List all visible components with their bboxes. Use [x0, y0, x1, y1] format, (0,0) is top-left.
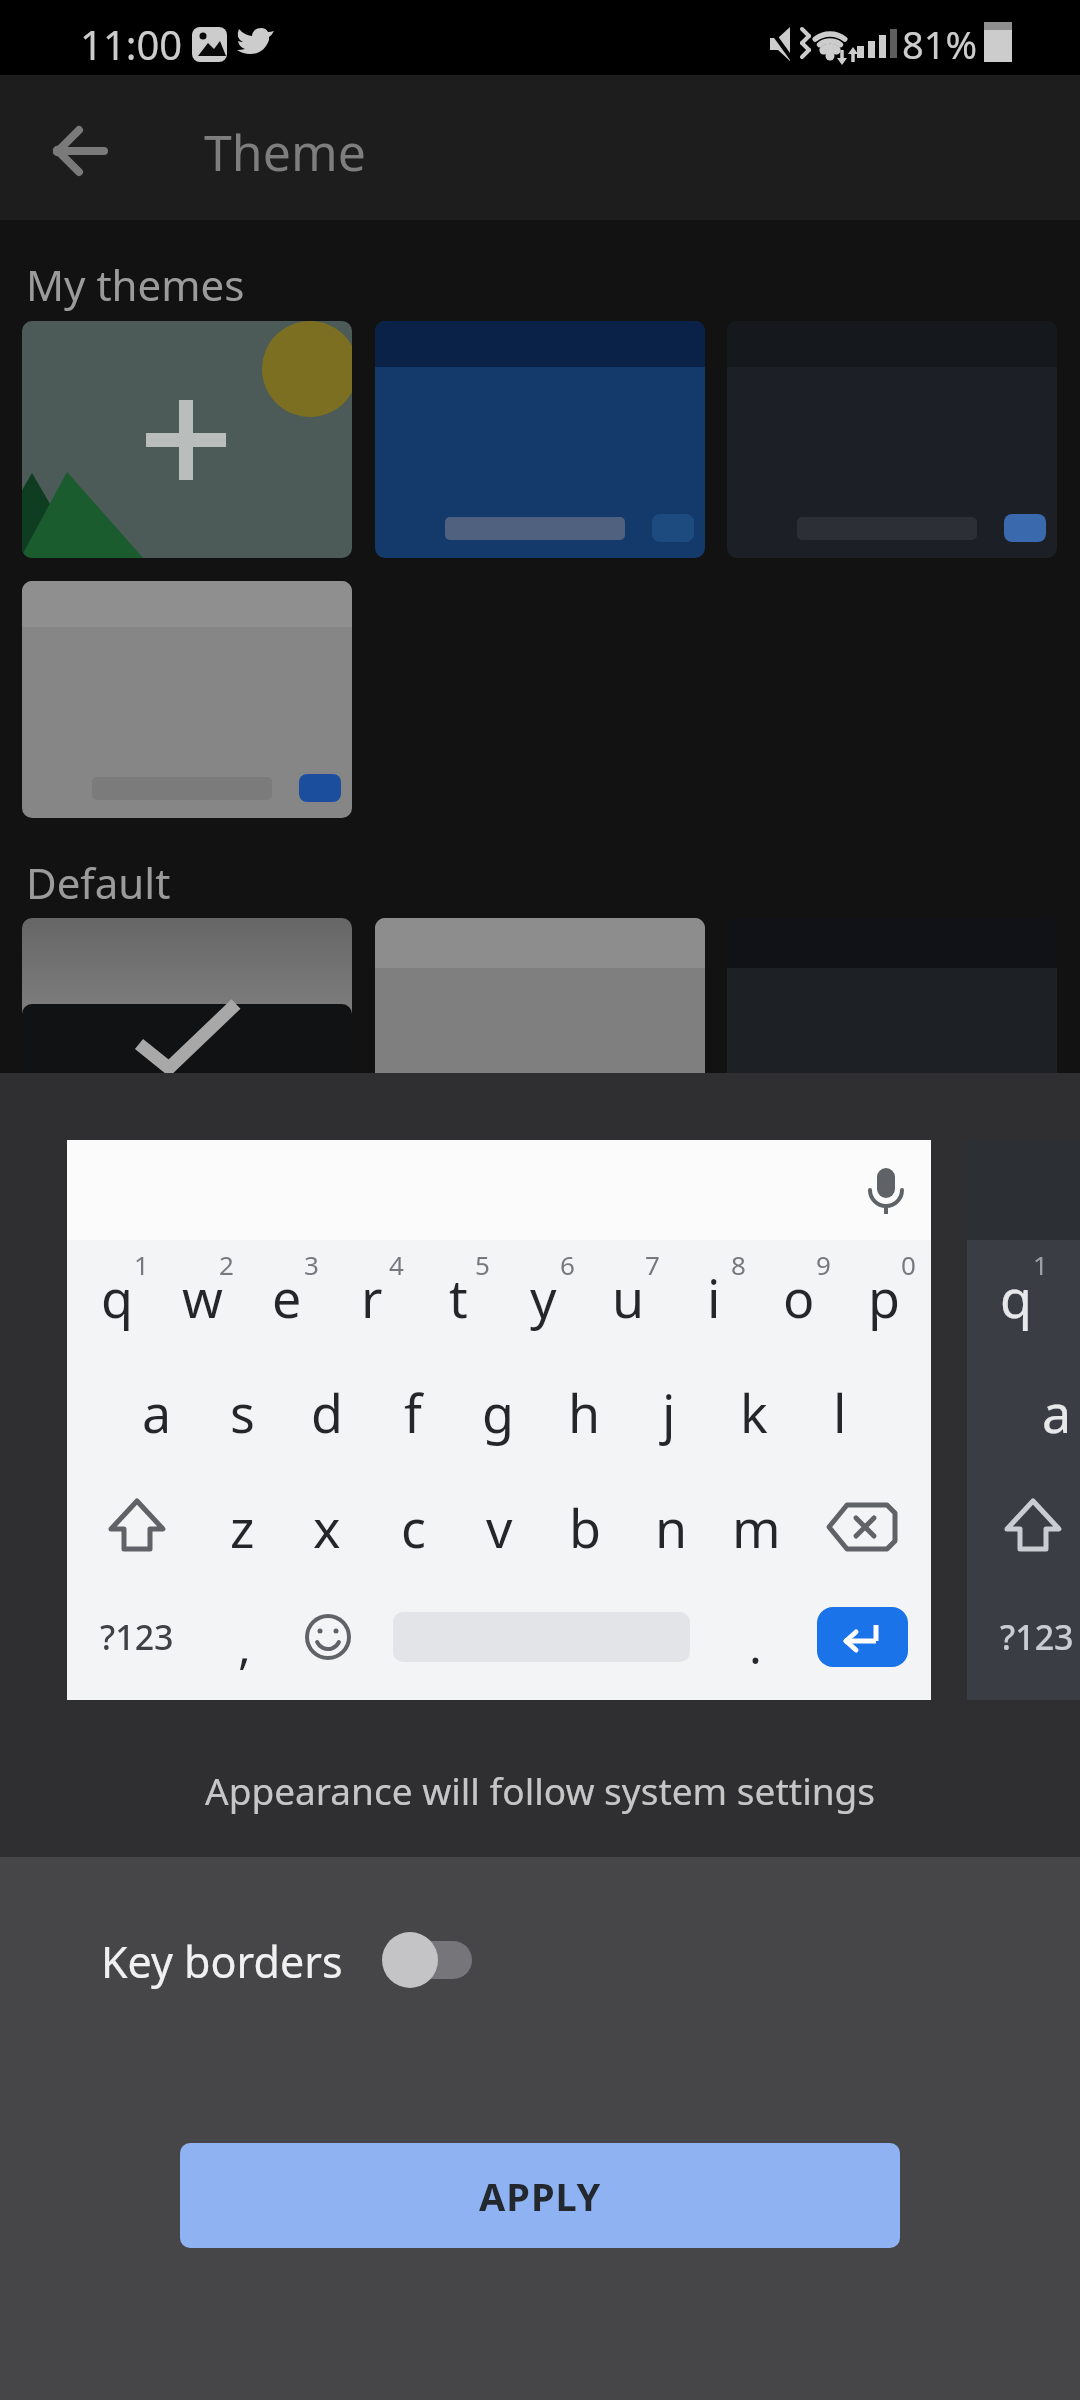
staticText: m	[732, 1492, 781, 1563]
button[interactable]	[22, 918, 352, 1155]
staticText: Default	[26, 854, 171, 911]
button[interactable]	[22, 321, 352, 558]
staticText: 8	[731, 1247, 746, 1282]
staticText: 0	[901, 1247, 916, 1282]
button[interactable]	[727, 918, 1057, 1155]
staticText: 9	[816, 1247, 831, 1282]
staticText: Theme	[204, 118, 366, 186]
staticText: Appearance will follow system settings	[205, 1765, 876, 1815]
staticText: 81%	[902, 18, 978, 70]
staticText: q	[101, 1262, 133, 1333]
staticText: x	[313, 1492, 341, 1563]
staticText: APPLY	[479, 2170, 602, 2222]
staticText: ?123	[1000, 1614, 1074, 1660]
staticText: a	[142, 1377, 172, 1448]
staticText: k	[740, 1377, 768, 1448]
staticText: y	[530, 1262, 557, 1333]
button[interactable]	[22, 581, 352, 818]
staticText: g	[482, 1377, 514, 1448]
staticText: 11:00	[80, 17, 183, 71]
staticText: d	[311, 1377, 343, 1448]
staticText: h	[568, 1377, 601, 1448]
staticText: u	[612, 1262, 645, 1333]
staticText: ,	[238, 1613, 251, 1678]
button[interactable]	[375, 321, 705, 558]
button[interactable]: APPLY	[180, 2143, 900, 2248]
staticText: 1	[134, 1247, 149, 1282]
staticText: ?123	[100, 1614, 174, 1660]
staticText: o	[783, 1262, 815, 1333]
staticText: n	[655, 1492, 688, 1563]
staticText: .	[749, 1613, 762, 1678]
staticText: 3	[304, 1247, 319, 1282]
button[interactable]	[384, 1941, 472, 1979]
staticText: 2	[219, 1247, 234, 1282]
staticText: My themes	[26, 256, 245, 313]
staticText: e	[272, 1262, 302, 1333]
staticText: c	[401, 1492, 426, 1563]
staticText: 4	[389, 1247, 404, 1282]
staticText: q	[1000, 1262, 1032, 1333]
staticText: j	[662, 1377, 676, 1448]
staticText: 7	[645, 1247, 660, 1282]
staticText: w	[182, 1262, 223, 1333]
staticText: 6	[560, 1247, 575, 1282]
staticText: 1	[1033, 1247, 1048, 1282]
staticText: s	[230, 1377, 255, 1448]
staticText: r	[361, 1262, 383, 1333]
staticText: t	[449, 1262, 468, 1333]
staticText: f	[404, 1377, 422, 1448]
staticText: z	[230, 1492, 255, 1563]
button[interactable]	[30, 105, 125, 200]
button[interactable]	[727, 321, 1057, 558]
button[interactable]	[375, 918, 705, 1155]
staticText: Key borders	[101, 1932, 343, 1991]
staticText: b	[569, 1492, 601, 1563]
staticText: l	[833, 1377, 847, 1448]
staticText: 5	[475, 1247, 490, 1282]
staticText: a	[1042, 1377, 1072, 1448]
staticText: i	[707, 1262, 721, 1333]
staticText: v	[486, 1492, 513, 1563]
staticText: p	[868, 1262, 900, 1333]
